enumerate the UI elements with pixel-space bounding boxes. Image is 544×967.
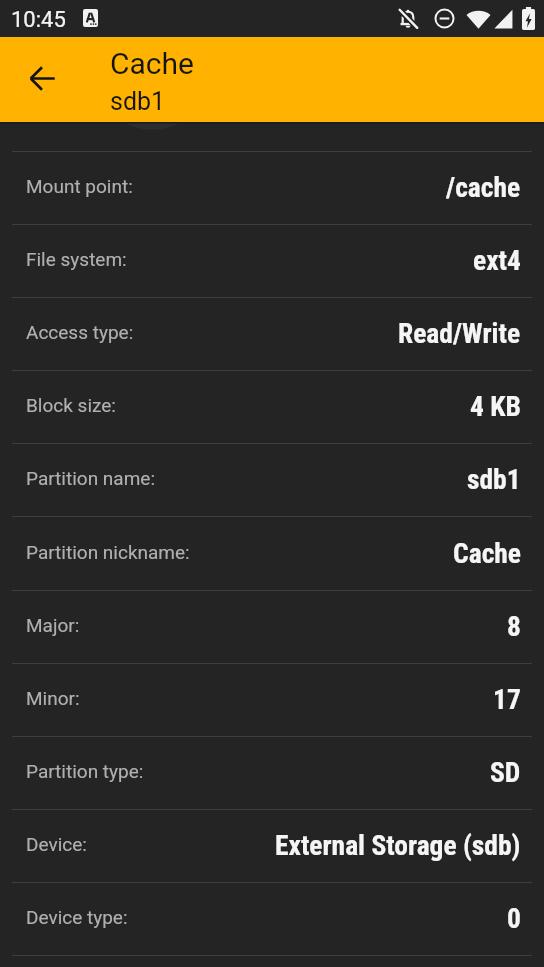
staticText: ext4: [473, 244, 521, 276]
button[interactable]: Mount point:: [0, 152, 544, 224]
button[interactable]: Device type:: [0, 883, 544, 955]
staticText: File system:: [26, 248, 127, 270]
staticText: Minor:: [26, 687, 80, 709]
staticText: sdb1: [110, 87, 166, 116]
staticText: 0: [507, 902, 521, 934]
staticText: Mount point:: [26, 175, 133, 197]
button[interactable]: Partition nickname:: [0, 517, 544, 590]
button[interactable]: Partition name:: [0, 444, 544, 516]
button[interactable]: Minor:: [0, 664, 544, 736]
staticText: Access type:: [26, 321, 134, 343]
staticText: Device:: [26, 833, 87, 855]
button[interactable]: Navigate up: [14, 50, 70, 106]
staticText: Block size:: [26, 394, 116, 416]
button[interactable]: Device:: [0, 810, 544, 882]
staticText: Read/Write: [398, 317, 521, 349]
staticText: Cache: [453, 537, 521, 569]
staticText: Device type:: [26, 906, 128, 928]
staticText: Major:: [26, 614, 80, 636]
staticText: External Storage (sdb): [275, 829, 521, 861]
button[interactable]: Major:: [0, 591, 544, 663]
staticText: 17: [493, 683, 521, 715]
button[interactable]: Block size:: [0, 371, 544, 443]
staticText: Partition nickname:: [26, 541, 190, 563]
staticText: /cache: [446, 171, 521, 203]
staticText: 10:45: [11, 7, 66, 33]
staticText: 8: [507, 610, 521, 642]
staticText: sdb1: [467, 463, 521, 495]
staticText: Partition type:: [26, 760, 144, 782]
staticText: Cache: [110, 46, 194, 81]
staticText: SD: [490, 756, 521, 788]
staticText: Partition name:: [26, 467, 156, 489]
button[interactable]: Partition type:: [0, 737, 544, 809]
button[interactable]: File system:: [0, 225, 544, 297]
staticText: 4 KB: [470, 390, 521, 422]
button[interactable]: Access type:: [0, 298, 544, 370]
